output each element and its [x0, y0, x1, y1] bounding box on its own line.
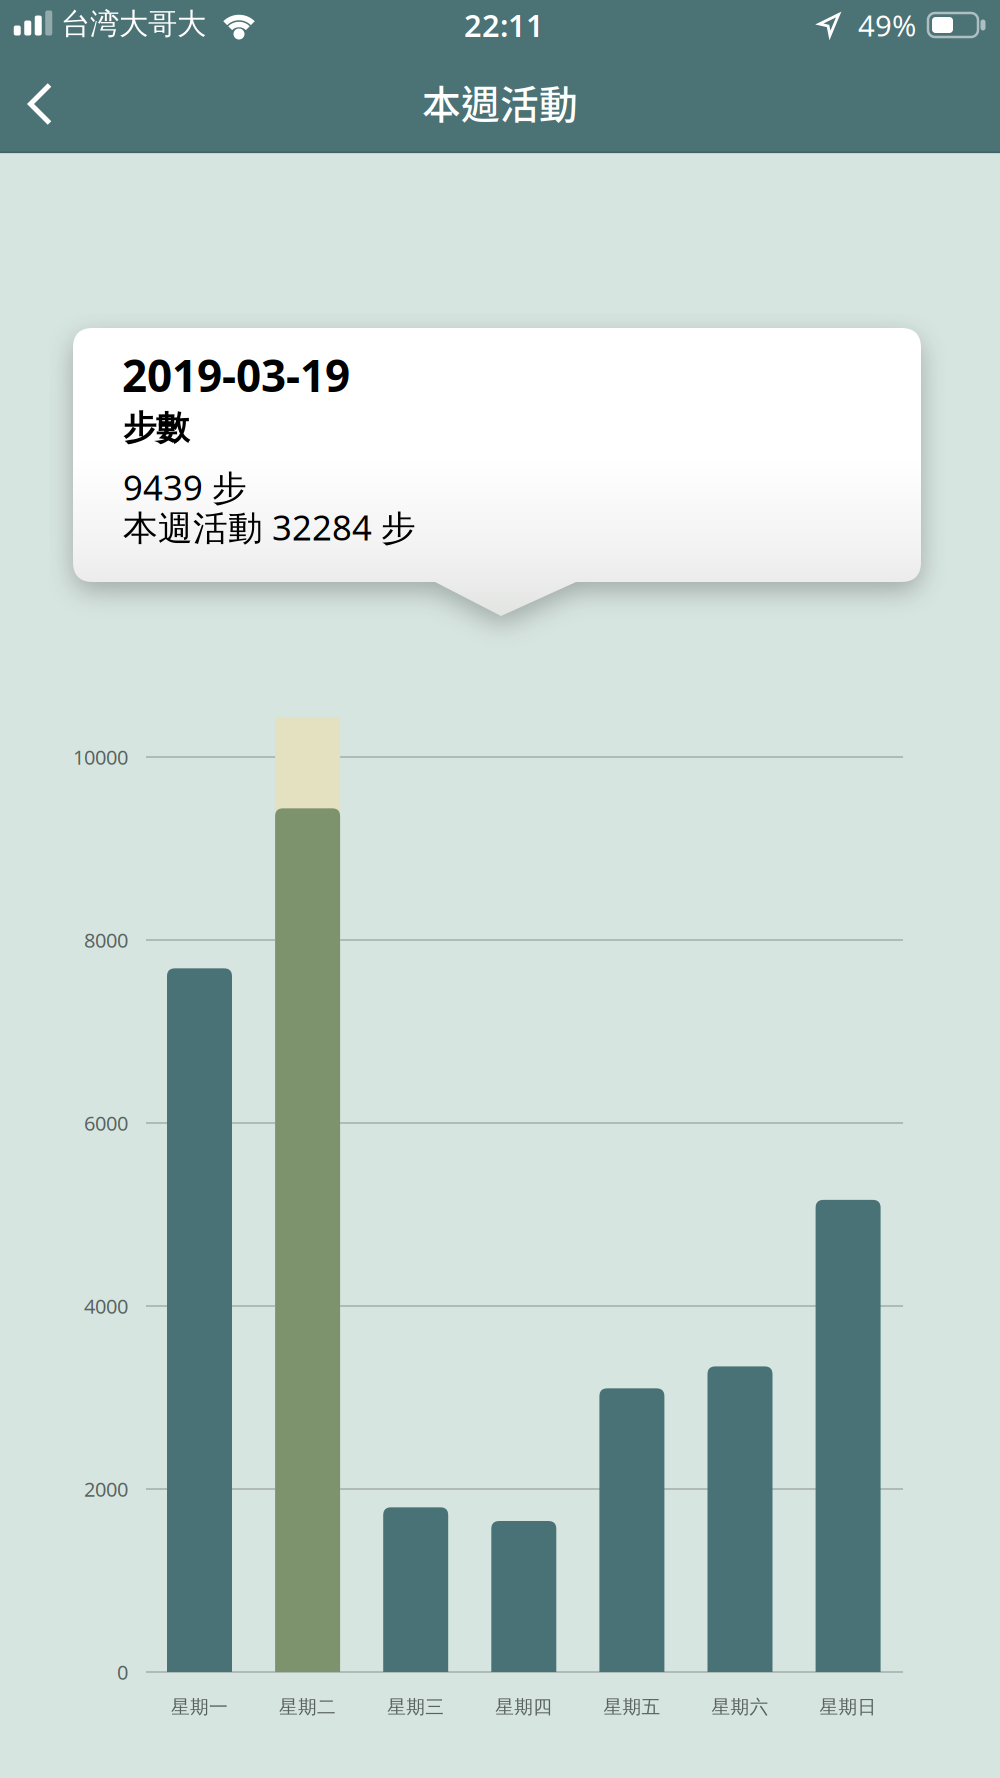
staticText: 星期四: [495, 1695, 552, 1718]
button[interactable]: [10, 65, 69, 143]
staticText: 星期三: [387, 1695, 444, 1718]
staticText: 星期六: [711, 1695, 768, 1718]
staticText: 8000: [84, 927, 128, 953]
staticText: 星期一: [171, 1695, 228, 1718]
staticText: 本週活動: [422, 74, 578, 130]
staticText: 步數: [123, 407, 189, 448]
staticText: 22:11: [464, 5, 544, 45]
button[interactable]: [599, 1388, 664, 1672]
button[interactable]: [383, 1507, 448, 1672]
staticText: 9439 步: [123, 464, 247, 510]
staticText: 0: [117, 1659, 128, 1685]
staticText: 本週活動 32284 步: [123, 504, 416, 550]
staticText: 6000: [84, 1110, 128, 1136]
staticText: 4000: [84, 1293, 128, 1319]
staticText: 台湾大哥大: [61, 6, 206, 42]
staticText: 49%: [858, 5, 916, 44]
staticText: 星期日: [820, 1695, 877, 1718]
button[interactable]: [491, 1521, 556, 1672]
staticText: 星期五: [603, 1695, 660, 1718]
button[interactable]: [707, 1366, 772, 1672]
button[interactable]: [167, 968, 232, 1672]
staticText: 星期二: [279, 1695, 336, 1718]
staticText: 2000: [84, 1476, 128, 1502]
button[interactable]: [816, 1200, 881, 1672]
staticText: 10000: [73, 744, 128, 770]
staticText: 2019-03-19: [122, 346, 350, 404]
